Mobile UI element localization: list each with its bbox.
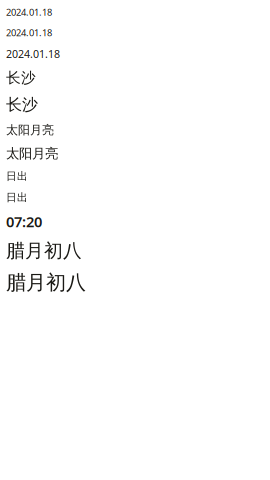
staticText: 太阳月亮 — [6, 123, 54, 137]
staticText: 2024.01.18 — [6, 47, 60, 61]
staticText: 2024.01.18 — [6, 26, 52, 39]
staticText: 07:20 — [6, 212, 42, 231]
staticText: 太阳月亮 — [6, 145, 58, 162]
staticText: 长沙 — [6, 95, 38, 115]
staticText: 日出 — [6, 170, 28, 183]
staticText: 腊月初八 — [6, 270, 86, 295]
staticText: 腊月初八 — [6, 239, 82, 262]
staticText: 2024.01.18 — [6, 6, 52, 18]
staticText: 长沙 — [6, 69, 36, 87]
staticText: 日出 — [6, 191, 28, 204]
